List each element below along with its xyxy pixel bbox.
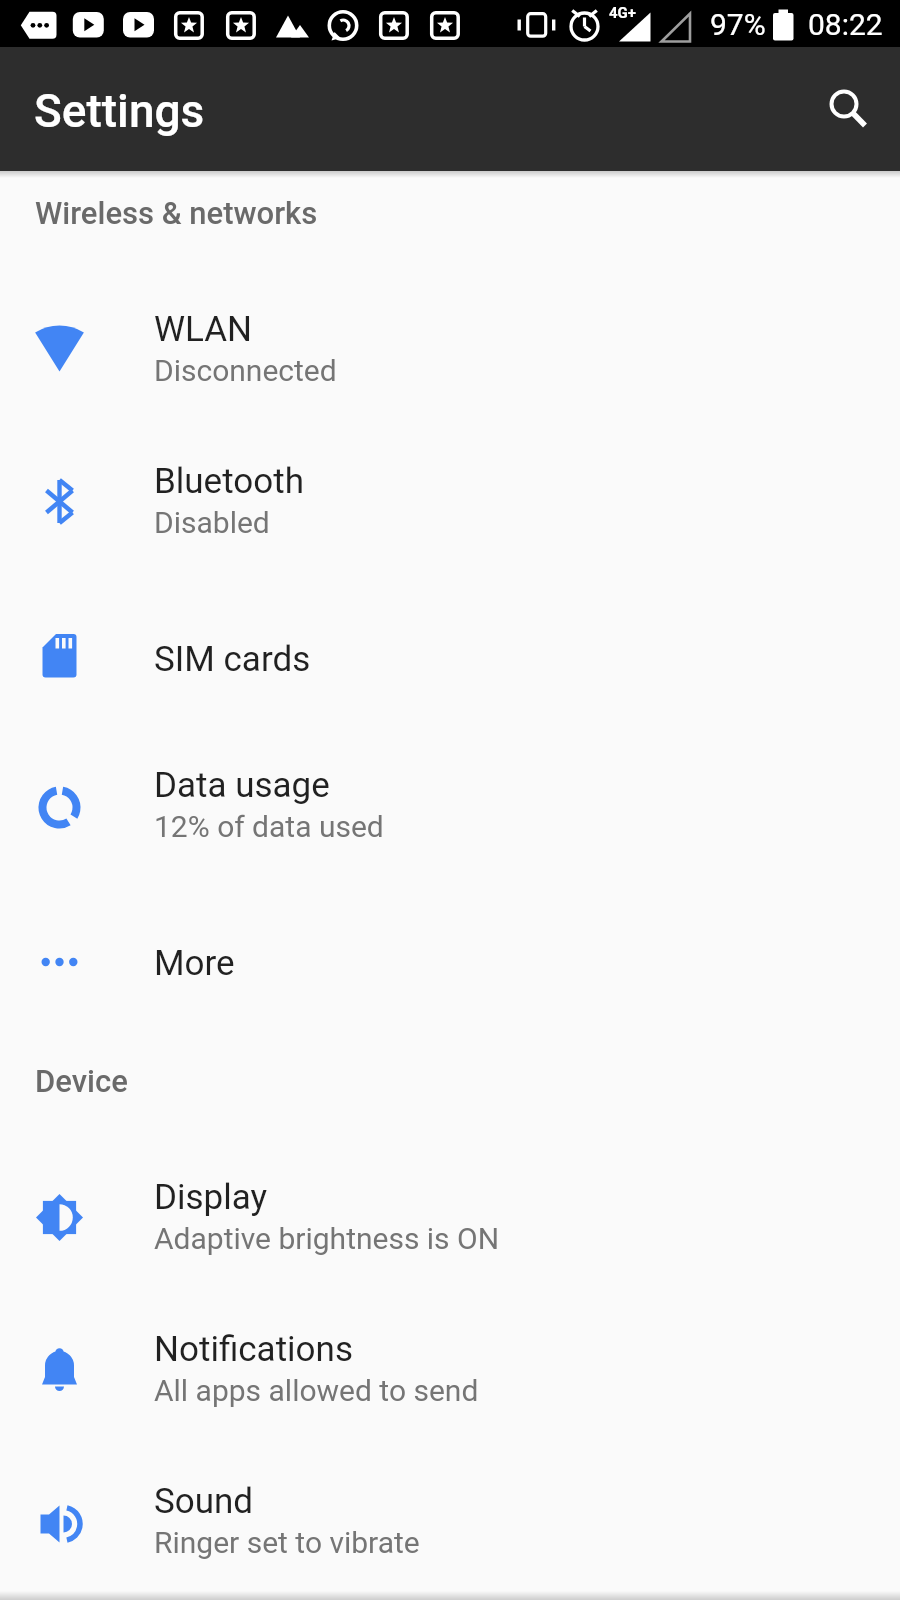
button[interactable]: Notifications [0,1295,900,1447]
staticText: Wireless & networks [35,195,318,231]
staticText: Device [35,1063,128,1099]
button[interactable]: Sound [0,1447,900,1599]
staticText: Notifications [154,1329,353,1370]
button[interactable]: WLAN [0,275,900,427]
staticText: 4G+ [609,4,637,22]
staticText: Ringer set to vibrate [154,1525,420,1560]
staticText: 08:22 [808,7,883,42]
button[interactable]: Display [0,1143,900,1295]
staticText: 97% [710,7,766,42]
button[interactable]: Data usage [0,731,900,883]
staticText: Disabled [154,505,270,540]
staticText: Disconnected [154,353,337,388]
button[interactable]: SIM cards [0,579,900,731]
staticText: Data usage [154,765,330,806]
staticText: SIM cards [154,639,311,680]
button[interactable] [822,87,866,131]
staticText: Bluetooth [154,461,304,502]
staticText: Adaptive brightness is ON [154,1221,500,1256]
button[interactable]: More [0,883,900,1035]
button[interactable]: Bluetooth [0,427,900,579]
staticText: More [154,943,235,984]
staticText: WLAN [154,309,253,350]
staticText: Sound [154,1481,254,1522]
staticText: Display [154,1177,268,1218]
staticText: 12% of data used [154,809,384,844]
staticText: All apps allowed to send [154,1373,479,1408]
staticText: Settings [34,84,205,138]
